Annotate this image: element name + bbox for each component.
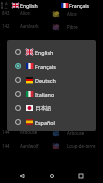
button[interactable]: English — [7, 45, 96, 59]
staticText: 日本語 — [35, 105, 52, 112]
staticText: Français — [35, 63, 56, 70]
button[interactable]: Français — [52, 0, 103, 10]
staticText: Loup-de-terre — [67, 143, 96, 149]
staticText: 144 — [2, 143, 10, 149]
staticText: English — [35, 49, 54, 56]
staticText: Aardwolf — [20, 143, 39, 149]
button[interactable]: Italiano — [7, 87, 96, 101]
button[interactable]: Recent apps — [71, 166, 91, 183]
staticText: Deutsch — [35, 77, 56, 84]
button[interactable]: 日本語 — [7, 101, 96, 115]
staticText: Aardvark — [20, 23, 39, 29]
staticText: A — [5, 1, 8, 7]
button[interactable]: 144 — [0, 143, 52, 149]
staticText: 142 — [2, 23, 10, 29]
button[interactable]: 843 — [0, 10, 52, 16]
button[interactable]: Home — [42, 166, 62, 183]
button[interactable]: Français — [7, 59, 96, 73]
staticText: Español — [35, 119, 55, 126]
button[interactable]: 142 — [0, 23, 52, 29]
button[interactable]: Back — [12, 166, 32, 183]
staticText: 843 — [2, 10, 10, 16]
button[interactable]: Pibre — [52, 21, 103, 32]
button[interactable]: Swap languages — [0, 0, 52, 10]
button[interactable]: Alice — [52, 8, 103, 19]
staticText: Arbouse — [67, 130, 85, 136]
button[interactable]: Loup-de-terre — [52, 140, 103, 151]
staticText: English — [20, 2, 38, 9]
staticText: 144 — [2, 129, 10, 135]
staticText: 文 — [4, 7, 9, 9]
button[interactable]: 144 — [0, 129, 52, 135]
button[interactable]: Deutsch — [7, 73, 96, 87]
staticText: Alice — [20, 10, 30, 16]
staticText: Alice — [67, 11, 77, 17]
staticText: Arbouse — [20, 129, 38, 135]
button[interactable]: Arbouse — [52, 127, 103, 138]
staticText: Italiano — [35, 91, 55, 98]
staticText: Français — [69, 2, 90, 9]
other: Swap languages — [1, 1, 9, 9]
button[interactable]: Español — [7, 115, 96, 129]
staticText: Pibre — [67, 24, 78, 30]
